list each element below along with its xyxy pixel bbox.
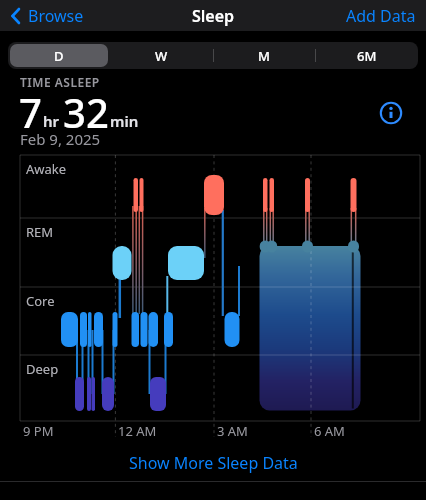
staticText: 7 xyxy=(19,85,42,139)
staticText: Sleep xyxy=(192,5,235,27)
button[interactable]: Show More Sleep Data xyxy=(0,452,426,474)
button[interactable]: D xyxy=(10,44,108,67)
staticText: 3 AM xyxy=(217,422,248,440)
staticText: 32 xyxy=(63,85,109,139)
staticText: Show More Sleep Data xyxy=(129,452,298,474)
staticText: Deep xyxy=(26,360,59,378)
staticText: Awake xyxy=(26,160,67,178)
staticText: W xyxy=(155,47,168,65)
staticText: 12 AM xyxy=(118,422,157,440)
staticText: 6 AM xyxy=(314,422,345,440)
button[interactable]: W xyxy=(112,44,210,67)
staticText: TIME ASLEEP xyxy=(20,74,100,90)
button[interactable] xyxy=(379,101,403,125)
staticText: 9 PM xyxy=(23,422,54,440)
staticText: D xyxy=(54,47,64,65)
button[interactable]: Browse xyxy=(10,5,84,27)
button[interactable]: Add Data xyxy=(346,5,416,27)
staticText: 6M xyxy=(357,47,377,65)
staticText: min xyxy=(110,111,139,131)
staticText: REM xyxy=(26,223,54,241)
button[interactable]: M xyxy=(214,44,313,67)
staticText: hr xyxy=(43,111,60,131)
staticText: Browse xyxy=(28,5,84,27)
button[interactable]: 6M xyxy=(317,44,416,67)
staticText: M xyxy=(258,47,270,65)
staticText: Add Data xyxy=(346,5,416,27)
staticText: Core xyxy=(26,292,55,310)
staticText: Feb 9, 2025 xyxy=(20,129,101,149)
